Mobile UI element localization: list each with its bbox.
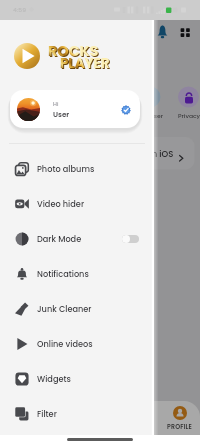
button[interactable]: Photo albums (0, 151, 154, 186)
button[interactable]: Hi (10, 90, 140, 128)
staticText: Dark Mode (37, 233, 82, 244)
staticText: Video hider (37, 198, 85, 209)
staticText: PLAYER (61, 55, 111, 74)
staticText: Junk Cleaner (37, 303, 92, 314)
staticText: Notifications (37, 268, 89, 279)
staticText: ROCKS (49, 42, 100, 62)
staticText: Widgets (37, 373, 71, 384)
staticText: Filter (37, 408, 57, 419)
staticText: 4:59 (13, 6, 26, 14)
staticText: Browser (139, 112, 164, 120)
button[interactable]: Notifications (0, 256, 154, 291)
button[interactable]: Video hider (0, 186, 154, 221)
staticText: Privacy (178, 112, 200, 120)
staticText: Play on iOS (126, 148, 174, 160)
button[interactable]: Junk Cleaner (0, 291, 154, 326)
button[interactable]: Filter (0, 396, 154, 431)
button[interactable]: Widgets (0, 361, 154, 396)
button[interactable]: Online videos (0, 326, 154, 361)
staticText: User (53, 109, 70, 119)
staticText: Hi (53, 100, 59, 108)
staticText: PLAYER (60, 54, 110, 73)
staticText: Photo albums (37, 163, 95, 174)
staticText: Online videos (37, 338, 93, 349)
button[interactable]: Dark Mode (0, 221, 154, 256)
button[interactable]: PROFILE (167, 406, 193, 431)
staticText: ROCKS (48, 41, 99, 61)
staticText: PROFILE (167, 422, 193, 431)
